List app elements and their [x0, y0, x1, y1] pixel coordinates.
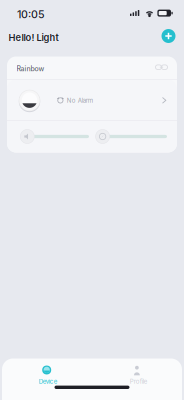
staticText: No Alarm: [67, 97, 93, 104]
button[interactable]: No Alarm: [7, 80, 177, 121]
staticText: 10:05: [17, 8, 45, 21]
button[interactable]: Device: [2, 358, 92, 384]
staticText: Profile: [130, 378, 148, 385]
button[interactable]: Profile: [92, 358, 182, 384]
button[interactable]: Add device: [161, 29, 175, 43]
staticText: Rainbow: [16, 64, 44, 73]
staticText: Device: [39, 378, 58, 385]
button[interactable]: Link devices: [155, 65, 167, 70]
staticText: Hello! Light: [8, 32, 58, 43]
